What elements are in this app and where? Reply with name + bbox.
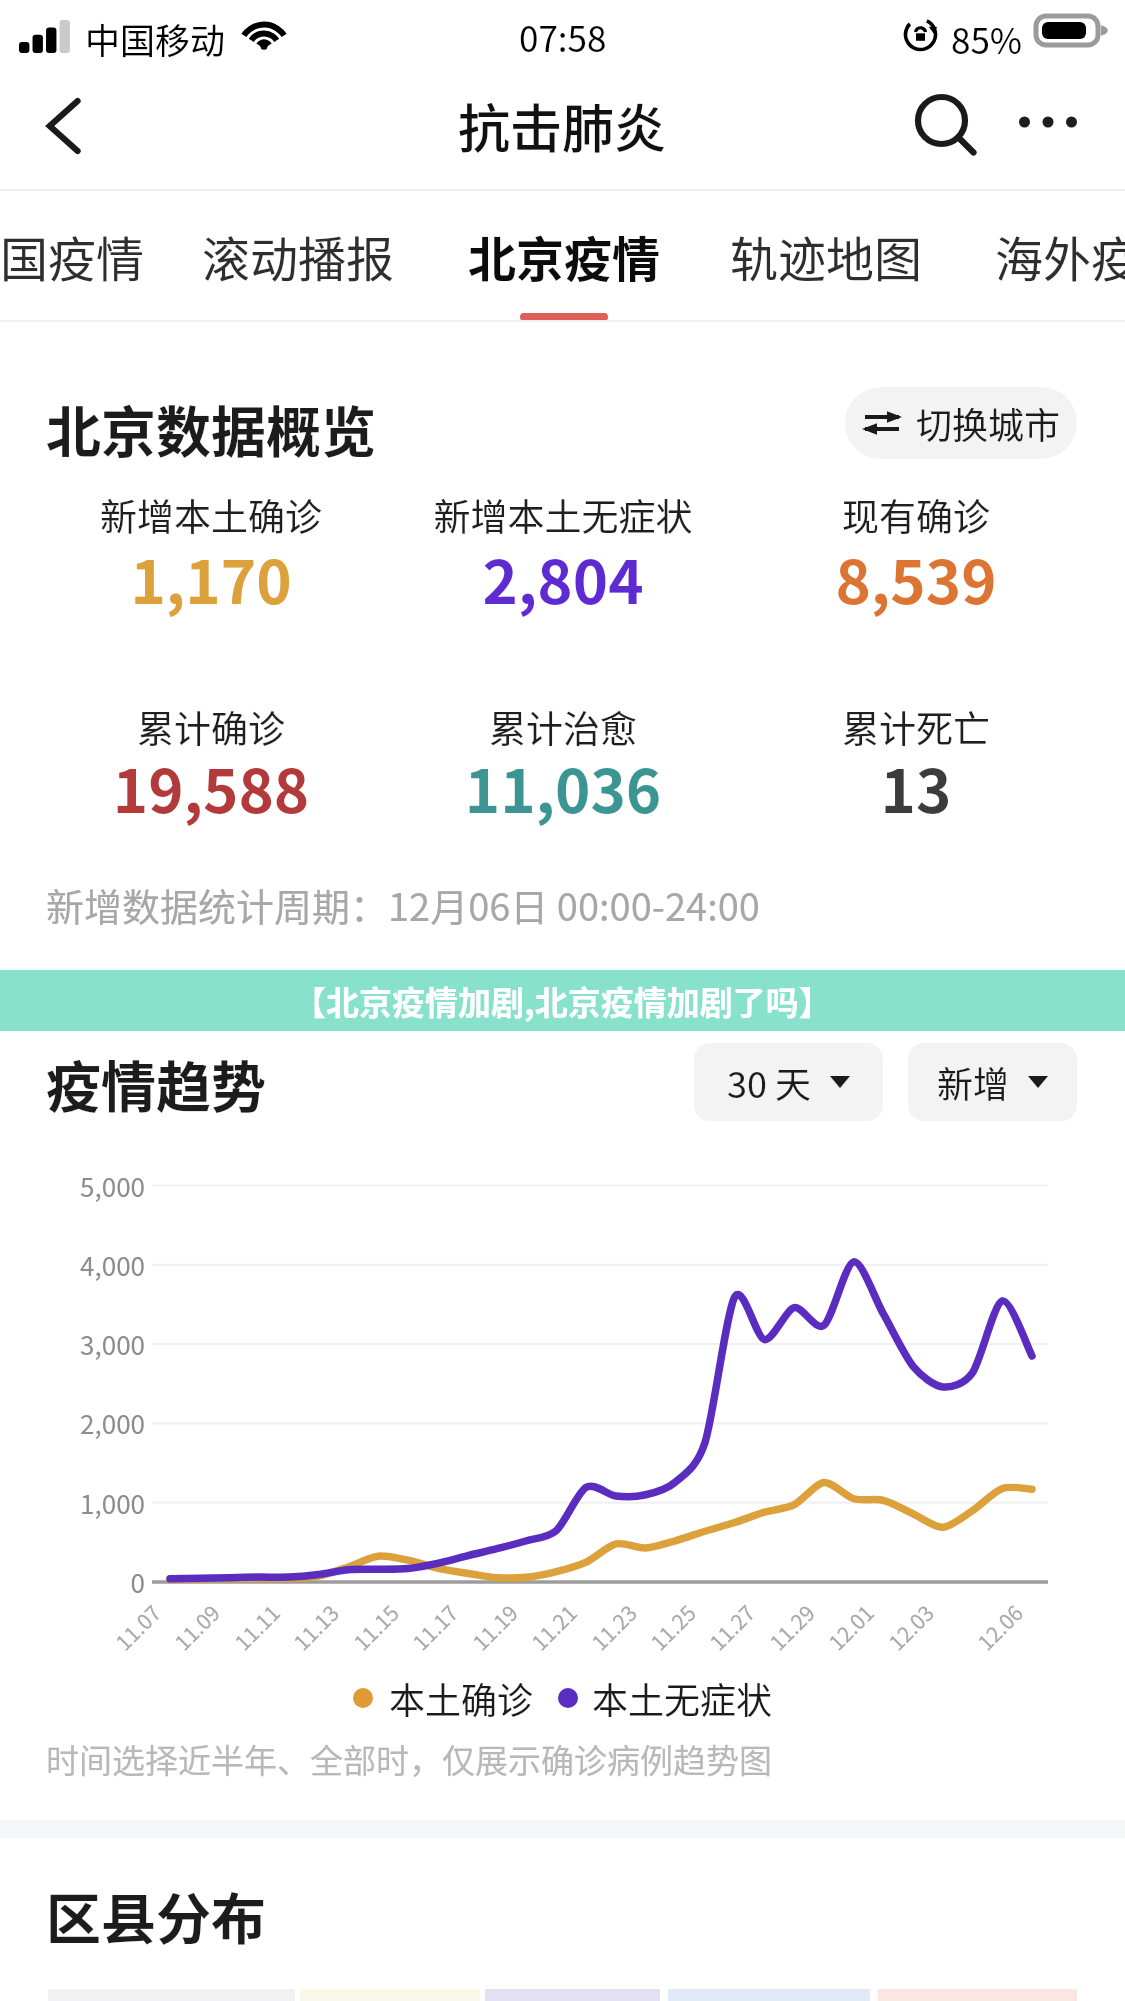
staticText: 切换城市 xyxy=(916,397,1061,449)
staticText: 85% xyxy=(951,13,1023,64)
staticText: 区县分布 xyxy=(46,1875,267,1955)
staticText: 30 天 xyxy=(727,1056,812,1108)
staticText: 国疫情 xyxy=(0,221,145,291)
button[interactable]: 累计死亡 xyxy=(726,700,1106,816)
staticText: 11.13 xyxy=(286,1598,345,1656)
staticText: 11.29 xyxy=(762,1598,821,1656)
button[interactable]: 本土确诊 xyxy=(353,1672,773,1724)
staticText: 8,539 xyxy=(726,534,1106,621)
staticText: 12.01 xyxy=(821,1598,880,1656)
button[interactable]: 滚动播报 xyxy=(178,191,418,320)
button[interactable]: Search xyxy=(898,75,994,191)
staticText: 累计死亡 xyxy=(726,700,1106,754)
button[interactable]: 北京疫情 xyxy=(444,191,684,320)
staticText: 累计治愈 xyxy=(373,700,753,754)
button[interactable]: 累计确诊 xyxy=(21,700,401,816)
staticText: 【北京疫情加剧,北京疫情加剧了吗】 xyxy=(293,977,832,1025)
staticText: 0 xyxy=(0,1563,145,1601)
staticText: 12.03 xyxy=(881,1598,940,1656)
staticText: 时间选择近半年、全部时，仅展示确诊病例趋势图 xyxy=(46,1735,772,1783)
staticText: 11.27 xyxy=(702,1598,761,1656)
staticText: 北京数据概览 xyxy=(46,388,377,468)
staticText: 新增本土确诊 xyxy=(21,488,401,542)
staticText: 轨迹地图 xyxy=(730,221,923,291)
button[interactable]: 海外疫 xyxy=(972,191,1125,320)
staticText: 13 xyxy=(726,743,1106,830)
button[interactable]: 新增本土确诊 xyxy=(21,488,401,604)
staticText: 2,804 xyxy=(373,534,753,621)
staticText: 11.19 xyxy=(465,1598,524,1656)
staticText: 11.07 xyxy=(108,1598,167,1656)
button[interactable]: 国疫情 xyxy=(0,191,167,320)
button[interactable]: 现有确诊 xyxy=(726,488,1106,604)
button[interactable]: 轨迹地图 xyxy=(706,191,946,320)
staticText: 4,000 xyxy=(0,1246,145,1284)
staticText: 11.15 xyxy=(346,1598,405,1656)
staticText: 11.23 xyxy=(584,1598,643,1656)
staticText: 抗击肺炎 xyxy=(458,88,667,163)
staticText: 11.09 xyxy=(167,1598,226,1656)
button[interactable]: 新增 xyxy=(908,1043,1077,1121)
staticText: 滚动播报 xyxy=(202,221,395,291)
staticText: 11,036 xyxy=(373,743,753,830)
staticText: 中国移动 xyxy=(85,13,226,64)
staticText: 新增本土无症状 xyxy=(373,488,753,542)
staticText: 07:58 xyxy=(519,11,607,62)
staticText: 1,000 xyxy=(0,1484,145,1522)
staticText: 12.06 xyxy=(970,1598,1029,1656)
staticText: 2,000 xyxy=(0,1404,145,1442)
staticText: 现有确诊 xyxy=(726,488,1106,542)
staticText: 3,000 xyxy=(0,1325,145,1363)
staticText: 5,000 xyxy=(0,1167,145,1205)
button[interactable]: 切换城市 xyxy=(845,387,1077,459)
staticText: 11.25 xyxy=(643,1598,702,1656)
staticText: 新增数据统计周期：12月06日 00:00-24:00 xyxy=(46,877,760,932)
staticText: 新增 xyxy=(937,1056,1010,1108)
staticText: 疫情趋势 xyxy=(46,1043,267,1123)
staticText: 19,588 xyxy=(21,743,401,830)
button[interactable]: 30 天 xyxy=(694,1043,883,1121)
staticText: 本土确诊 xyxy=(389,1672,534,1724)
button[interactable]: More options xyxy=(1006,75,1106,191)
staticText: 11.11 xyxy=(227,1598,286,1656)
staticText: 11.21 xyxy=(524,1598,583,1656)
staticText: 海外疫 xyxy=(995,221,1125,291)
staticText: 北京疫情 xyxy=(468,221,661,291)
staticText: 11.17 xyxy=(405,1598,464,1656)
button[interactable]: 累计治愈 xyxy=(373,700,753,816)
staticText: 1,170 xyxy=(21,534,401,621)
button[interactable]: Back xyxy=(0,75,130,191)
staticText: 本土无症状 xyxy=(592,1672,773,1724)
staticText: 累计确诊 xyxy=(21,700,401,754)
button[interactable]: 新增本土无症状 xyxy=(373,488,753,604)
